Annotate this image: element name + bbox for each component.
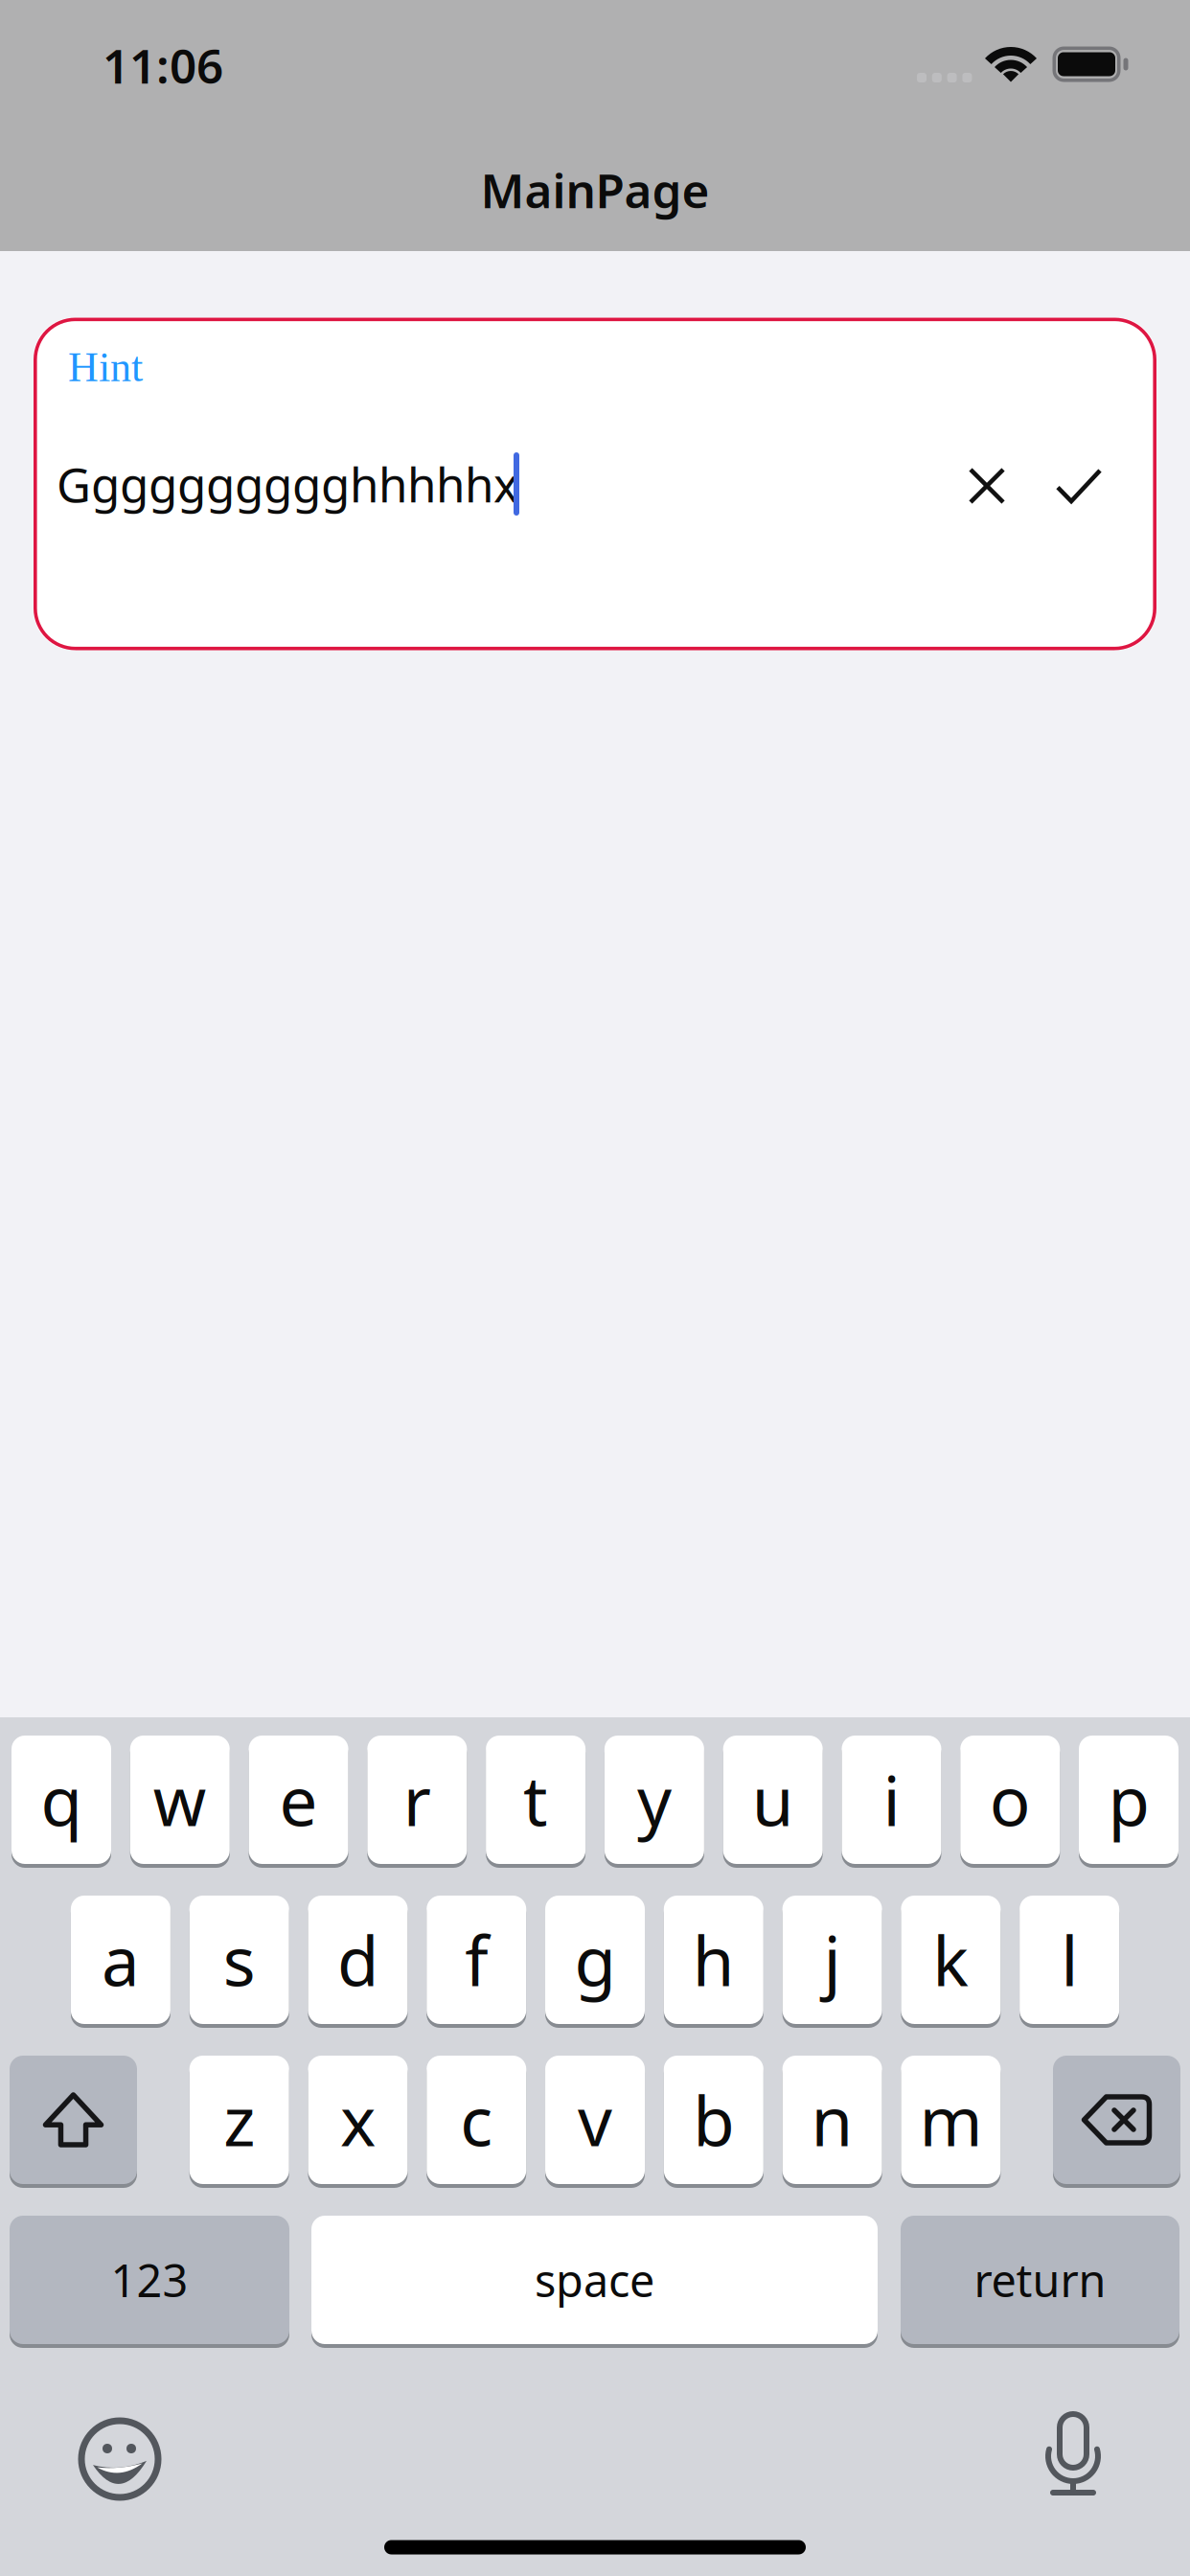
staticText: MainPage (481, 158, 709, 221)
staticText: Hint (68, 344, 143, 390)
staticText: r (403, 1755, 431, 1845)
staticText: v (578, 2075, 612, 2165)
button[interactable]: o (960, 1736, 1060, 1864)
staticText: a (101, 1915, 140, 2005)
button[interactable]: a (71, 1896, 170, 2024)
button[interactable]: j (782, 1896, 882, 2024)
staticText: j (824, 1915, 841, 2005)
staticText: d (337, 1915, 378, 2005)
button[interactable]: y (604, 1736, 704, 1864)
staticText: Gggggggggghhhhhx (57, 453, 518, 515)
button[interactable]: k (901, 1896, 1001, 2024)
button[interactable]: z (189, 2056, 289, 2184)
staticText: w (153, 1755, 207, 1845)
staticText: y (637, 1755, 672, 1845)
button[interactable]: Dictation (1045, 2414, 1101, 2496)
button[interactable]: u (723, 1736, 823, 1864)
staticText: q (41, 1755, 82, 1845)
button[interactable]: t (486, 1736, 586, 1864)
staticText: l (1061, 1915, 1078, 2005)
button[interactable]: Clear text (971, 470, 1003, 502)
button[interactable]: c (427, 2056, 526, 2184)
staticText: 123 (111, 2250, 188, 2310)
staticText: return (974, 2250, 1106, 2310)
staticText: e (279, 1755, 318, 1845)
button[interactable]: space (311, 2216, 878, 2344)
staticText: t (523, 1755, 548, 1845)
staticText: k (933, 1915, 969, 2005)
button[interactable]: b (664, 2056, 763, 2184)
button[interactable]: g (545, 1896, 645, 2024)
button[interactable]: x (308, 2056, 408, 2184)
staticText: u (752, 1755, 794, 1845)
staticText: 11:06 (103, 34, 223, 97)
staticText: p (1108, 1755, 1149, 1845)
button[interactable]: h (664, 1896, 763, 2024)
staticText: x (340, 2075, 376, 2165)
button[interactable]: Delete (1053, 2056, 1180, 2184)
staticText: c (460, 2075, 493, 2165)
staticText: s (223, 1915, 256, 2005)
button[interactable]: Emoji (74, 2413, 166, 2505)
staticText: f (465, 1915, 488, 2005)
button[interactable]: r (367, 1736, 467, 1864)
button[interactable]: f (427, 1896, 526, 2024)
button[interactable]: q (11, 1736, 111, 1864)
staticText: b (693, 2075, 734, 2165)
staticText: space (535, 2250, 654, 2310)
staticText: m (919, 2075, 982, 2165)
button[interactable]: d (308, 1896, 408, 2024)
staticText: z (223, 2075, 255, 2165)
button[interactable]: m (901, 2056, 1001, 2184)
button[interactable]: i (842, 1736, 941, 1864)
staticText: o (989, 1755, 1031, 1845)
button[interactable]: 123 (10, 2216, 289, 2344)
button[interactable]: return (901, 2216, 1179, 2344)
staticText: i (883, 1755, 900, 1845)
button[interactable]: e (249, 1736, 348, 1864)
staticText: g (574, 1915, 616, 2005)
staticText: h (693, 1915, 735, 2005)
button[interactable]: Text field (34, 318, 1156, 650)
button[interactable]: n (782, 2056, 882, 2184)
button[interactable]: w (130, 1736, 230, 1864)
button[interactable]: Done (1058, 471, 1100, 501)
button[interactable]: v (545, 2056, 645, 2184)
button[interactable]: Shift (10, 2056, 137, 2184)
button[interactable]: s (189, 1896, 289, 2024)
button[interactable]: l (1020, 1896, 1119, 2024)
staticText: n (811, 2075, 853, 2165)
button[interactable]: p (1079, 1736, 1179, 1864)
